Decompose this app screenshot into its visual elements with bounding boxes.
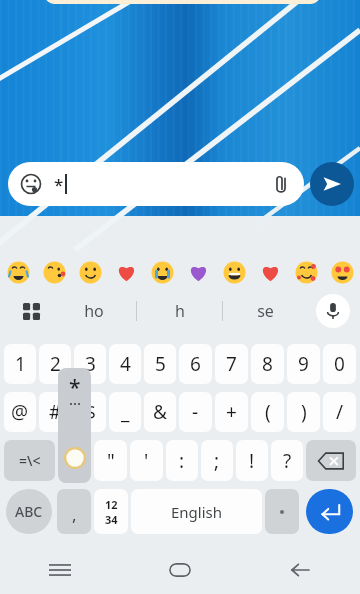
button[interactable]: 1 xyxy=(4,344,36,384)
staticText: $ xyxy=(85,399,96,425)
staticText: " xyxy=(107,448,115,474)
staticText: 7 xyxy=(226,351,237,377)
button[interactable]: ; xyxy=(201,440,233,481)
staticText: _ xyxy=(121,399,130,425)
staticText: & xyxy=(153,399,167,425)
button[interactable]: Emoji suggestion xyxy=(36,256,72,288)
button[interactable]: ho xyxy=(52,288,136,334)
button[interactable]: Emoji xyxy=(18,171,44,197)
button[interactable]: : xyxy=(166,440,198,481)
button[interactable]: Recent apps xyxy=(0,546,120,594)
staticText: + xyxy=(226,399,237,425)
staticText: : xyxy=(179,448,185,474)
button[interactable]: 6 xyxy=(179,344,212,384)
button[interactable]: ! xyxy=(236,440,268,481)
staticText: English xyxy=(171,502,223,522)
staticText: 8 xyxy=(262,351,273,377)
button[interactable]: _ xyxy=(109,392,141,432)
button[interactable]: 3 xyxy=(74,344,106,384)
staticText: 12 xyxy=(105,497,118,512)
staticText: # xyxy=(49,399,62,425)
button[interactable]: Open toolbar xyxy=(14,294,48,328)
staticText: =\< xyxy=(19,451,41,470)
button[interactable]: Emoji suggestion xyxy=(108,256,144,288)
button[interactable]: Home xyxy=(120,546,240,594)
button[interactable]: 2 xyxy=(39,344,71,384)
button[interactable]: Numbers xyxy=(94,489,128,534)
staticText: ! xyxy=(249,448,255,474)
staticText: ( xyxy=(265,399,271,425)
button[interactable]: =\< xyxy=(4,440,55,481)
button[interactable]: ABC xyxy=(4,489,54,534)
button[interactable]: @ xyxy=(4,392,36,432)
button[interactable]: , xyxy=(57,489,91,534)
button[interactable]: 7 xyxy=(215,344,248,384)
staticText: 9 xyxy=(298,351,309,377)
button[interactable]: - xyxy=(179,392,212,432)
staticText: , xyxy=(72,503,77,526)
staticText: 0 xyxy=(334,351,345,377)
staticText: * xyxy=(54,173,64,196)
button[interactable]: ) xyxy=(287,392,320,432)
button[interactable]: 5 xyxy=(144,344,176,384)
staticText: 5 xyxy=(155,351,166,377)
button[interactable]: 8 xyxy=(251,344,284,384)
button[interactable]: * xyxy=(58,440,91,481)
button[interactable]: & xyxy=(144,392,176,432)
staticText: ABC xyxy=(15,502,43,521)
button[interactable]: 0 xyxy=(323,344,356,384)
button[interactable]: + xyxy=(215,392,248,432)
button[interactable]: Enter xyxy=(302,489,356,534)
button[interactable]: Emoji suggestion xyxy=(0,256,36,288)
button[interactable]: Voice input xyxy=(316,294,350,328)
staticText: 1 xyxy=(15,351,26,377)
staticText: ho xyxy=(84,300,104,322)
button[interactable]: 9 xyxy=(287,344,320,384)
button[interactable]: English xyxy=(131,489,262,534)
button[interactable]: se xyxy=(223,288,308,334)
staticText: 3 xyxy=(85,351,96,377)
staticText: * xyxy=(69,448,80,474)
staticText: h xyxy=(175,300,185,322)
staticText: 34 xyxy=(105,512,118,527)
button[interactable]: Backspace xyxy=(306,440,356,481)
button[interactable]: " xyxy=(94,440,127,481)
staticText: ; xyxy=(214,448,220,474)
staticText: @ xyxy=(11,399,29,425)
button[interactable]: Emoji suggestion xyxy=(144,256,180,288)
button[interactable]: # xyxy=(39,392,71,432)
button[interactable]: ' xyxy=(130,440,163,481)
staticText: * xyxy=(69,373,81,402)
button[interactable] xyxy=(265,489,299,534)
staticText: 2 xyxy=(50,351,61,377)
staticText: ' xyxy=(144,448,149,474)
button[interactable]: Back xyxy=(240,546,360,594)
button[interactable]: Emoji suggestion xyxy=(72,256,108,288)
button[interactable]: Emoji suggestion xyxy=(288,256,324,288)
button[interactable]: / xyxy=(323,392,356,432)
button[interactable]: Attach xyxy=(268,171,294,197)
button[interactable]: h xyxy=(137,288,222,334)
staticText: / xyxy=(336,399,344,425)
button[interactable]: Emoji suggestion xyxy=(180,256,216,288)
button[interactable]: $ xyxy=(74,392,106,432)
staticText: se xyxy=(257,300,274,322)
staticText: ? xyxy=(283,448,292,474)
staticText: ) xyxy=(301,399,307,425)
button[interactable]: ( xyxy=(251,392,284,432)
staticText: 6 xyxy=(190,351,201,377)
button[interactable]: Emoji xyxy=(8,162,304,206)
button[interactable]: Send xyxy=(310,162,354,206)
staticText: - xyxy=(192,399,199,425)
button[interactable]: Emoji suggestion xyxy=(216,256,252,288)
button[interactable]: Emoji suggestion xyxy=(252,256,288,288)
button[interactable]: Emoji suggestion xyxy=(324,256,360,288)
button[interactable]: ? xyxy=(271,440,303,481)
staticText: 4 xyxy=(120,351,131,377)
button[interactable]: 4 xyxy=(109,344,141,384)
